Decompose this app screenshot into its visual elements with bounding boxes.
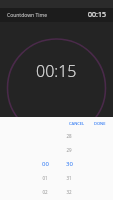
- button[interactable]: 31: [62, 171, 76, 185]
- staticText: 30: [66, 160, 73, 168]
- staticText: 29: [66, 147, 72, 153]
- button[interactable]: CANCEL: [66, 120, 88, 127]
- button[interactable]: 29: [62, 143, 76, 157]
- button[interactable]: 00: [38, 157, 52, 171]
- staticText: 32: [66, 189, 72, 195]
- staticText: 01: [42, 175, 48, 181]
- staticText: Countdown Time: [7, 12, 48, 19]
- staticText: DONE: [94, 121, 106, 126]
- staticText: 02: [42, 189, 48, 195]
- staticText: CANCEL: [69, 121, 85, 126]
- staticText: 00:15: [36, 60, 77, 82]
- button[interactable]: 32: [62, 185, 76, 199]
- button[interactable]: 01: [38, 171, 52, 185]
- button[interactable]: DONE: [91, 120, 109, 127]
- button[interactable]: 02: [38, 185, 52, 199]
- staticText: 00:15: [88, 10, 106, 20]
- staticText: 31: [66, 175, 72, 181]
- button[interactable]: 30: [62, 157, 76, 171]
- button[interactable]: 28: [62, 129, 76, 143]
- staticText: 28: [66, 133, 72, 139]
- staticText: 00: [42, 160, 49, 168]
